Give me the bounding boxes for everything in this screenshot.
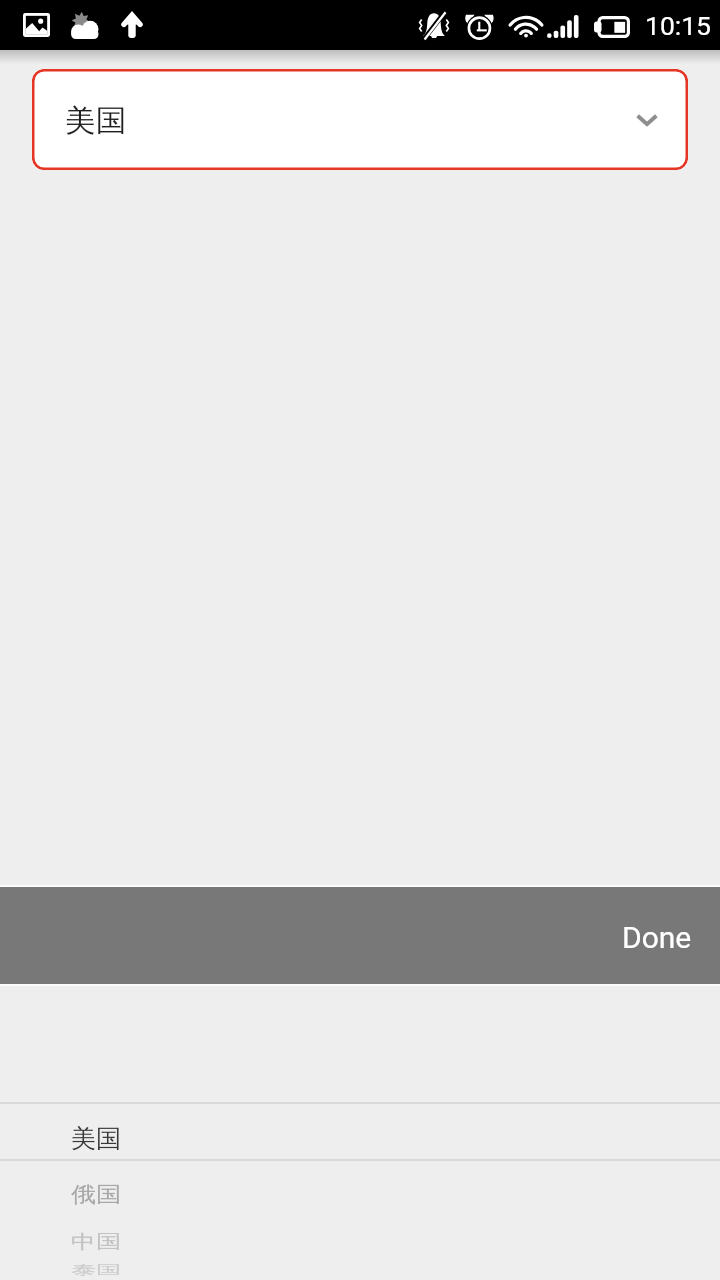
staticText: Done [622,920,692,955]
button[interactable]: Done [0,887,720,984]
staticText: 中国 [71,1230,121,1253]
other: Expand [634,107,660,133]
staticText: 10:15 [645,10,711,41]
button[interactable]: 美国 [0,1035,720,1280]
staticText: 泰国 [71,1262,121,1277]
staticText: 美国 [65,102,126,140]
staticText: 美国 [71,1123,121,1154]
button[interactable]: 美国 [32,69,688,170]
staticText: 俄国 [71,1181,121,1208]
